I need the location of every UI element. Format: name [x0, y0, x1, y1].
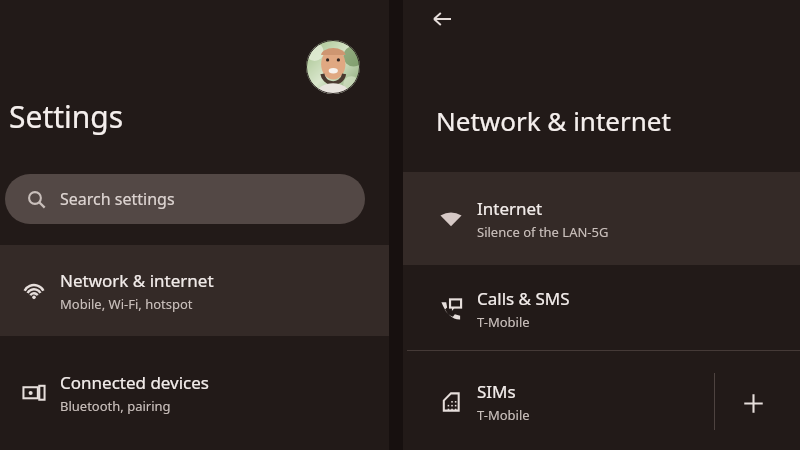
staticText: Network & internet: [60, 269, 214, 292]
button[interactable]: Add SIM: [733, 383, 773, 423]
button[interactable]: Search settings: [5, 174, 365, 224]
staticText: Calls & SMS: [477, 287, 570, 310]
button[interactable]: Network & internet: [0, 245, 389, 336]
button[interactable]: Account: [306, 40, 360, 94]
staticText: Internet: [477, 197, 543, 220]
staticText: SIMs: [477, 380, 516, 403]
staticText: Connected devices: [60, 371, 210, 394]
button[interactable]: Internet: [403, 172, 800, 265]
staticText: T-Mobile: [477, 313, 530, 331]
staticText: Settings: [9, 96, 124, 137]
staticText: Mobile, Wi-Fi, hotspot: [60, 295, 193, 313]
button[interactable]: SIMs: [403, 357, 800, 447]
staticText: T-Mobile: [477, 406, 530, 424]
staticText: Silence of the LAN-5G: [477, 223, 609, 241]
button[interactable]: Calls & SMS: [403, 268, 800, 350]
staticText: Search settings: [60, 188, 175, 210]
staticText: Network & internet: [436, 103, 671, 138]
button[interactable]: Connected devices: [0, 345, 389, 440]
button[interactable]: Back: [423, 0, 461, 38]
staticText: Bluetooth, pairing: [60, 397, 171, 415]
